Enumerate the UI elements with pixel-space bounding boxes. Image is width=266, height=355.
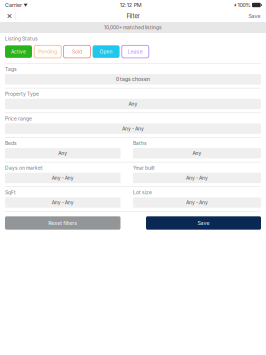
staticText: Any: [128, 101, 137, 107]
staticText: Any - Any: [186, 200, 208, 206]
staticText: Any - Any: [186, 175, 208, 181]
staticText: Save: [197, 220, 209, 226]
staticText: Reset filters: [48, 220, 77, 226]
button[interactable]: Reset filters: [5, 216, 120, 230]
button[interactable]: Save: [245, 10, 263, 22]
staticText: Listing Status: [5, 36, 38, 42]
button[interactable]: Any: [5, 99, 261, 109]
staticText: Lot size: [133, 190, 152, 196]
button[interactable]: Close: [3, 10, 16, 22]
staticText: Any: [58, 150, 67, 156]
staticText: Tags: [5, 66, 17, 72]
button[interactable]: Any - Any: [5, 123, 261, 134]
button[interactable]: Pending: [34, 45, 61, 58]
staticText: Sold: [72, 49, 82, 55]
staticText: Days on market: [5, 165, 43, 171]
button[interactable]: Any - Any: [133, 173, 261, 183]
staticText: 12:12 PM: [120, 2, 142, 8]
staticText: 10,000+ matched listings: [104, 24, 162, 30]
button[interactable]: Lease: [122, 45, 149, 58]
staticText: Lease: [128, 49, 143, 55]
button[interactable]: Any - Any: [133, 197, 261, 208]
button[interactable]: Open: [93, 45, 120, 58]
staticText: Beds: [5, 140, 17, 146]
staticText: Year built: [133, 165, 155, 171]
staticText: Open: [100, 49, 113, 55]
staticText: Filter: [126, 12, 139, 20]
staticText: Price range: [5, 116, 32, 122]
staticText: Any - Any: [122, 126, 144, 132]
staticText: Any - Any: [52, 175, 74, 181]
button[interactable]: Sold: [63, 45, 90, 58]
staticText: Carrier: [5, 2, 22, 8]
staticText: Save: [248, 13, 260, 19]
button[interactable]: Active: [5, 45, 32, 58]
button[interactable]: 0 tags chosen: [5, 74, 261, 84]
button[interactable]: Save: [146, 216, 261, 230]
staticText: Any - Any: [52, 200, 74, 206]
staticText: Active: [11, 49, 26, 55]
staticText: Baths: [133, 140, 147, 146]
staticText: Pending: [38, 49, 57, 55]
button[interactable]: Any: [133, 148, 261, 158]
staticText: Property Type: [5, 91, 39, 97]
staticText: 0 tags chosen: [116, 76, 150, 82]
button[interactable]: Any - Any: [5, 173, 120, 183]
staticText: SqFt: [5, 190, 16, 196]
staticText: Any: [192, 150, 201, 156]
button[interactable]: Any - Any: [5, 197, 120, 208]
button[interactable]: Any: [5, 148, 120, 158]
staticText: 100%: [238, 2, 251, 8]
